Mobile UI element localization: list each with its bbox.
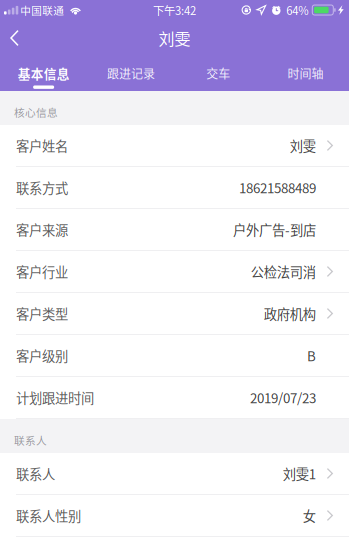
staticText: 时间轴 xyxy=(287,65,323,82)
staticText: 政府机构 xyxy=(264,304,316,323)
staticText: 户外广告-到店 xyxy=(233,220,316,239)
staticText: 中国联通 xyxy=(20,2,64,18)
staticText: 客户级别 xyxy=(16,346,68,365)
button[interactable]: 客户来源 xyxy=(0,209,349,251)
staticText: 客户来源 xyxy=(16,220,68,239)
staticText: B xyxy=(307,346,316,365)
staticText: 64% xyxy=(286,2,308,18)
staticText: 2019/07/23 xyxy=(250,388,316,407)
button[interactable]: 基本信息 xyxy=(0,56,87,91)
staticText: 联系人 xyxy=(14,432,47,448)
staticText: 交车 xyxy=(206,65,230,82)
staticText: 基本信息 xyxy=(18,64,70,82)
staticText: 公检法司消 xyxy=(251,262,316,281)
staticText: 联系人性别 xyxy=(16,506,81,525)
button[interactable]: 联系方式 xyxy=(0,167,349,209)
button[interactable]: 联系人性别 xyxy=(0,495,349,537)
button[interactable]: 客户类型 xyxy=(0,293,349,335)
staticText: 18621588489 xyxy=(239,178,316,197)
staticText: 核心信息 xyxy=(14,104,58,120)
staticText: 客户类型 xyxy=(16,304,68,323)
staticText: 女 xyxy=(303,506,316,525)
staticText: 联系人 xyxy=(16,464,55,483)
button[interactable]: Back xyxy=(0,20,44,56)
button[interactable]: 客户行业 xyxy=(0,251,349,293)
staticText: 刘雯1 xyxy=(283,464,316,483)
button[interactable]: 客户姓名 xyxy=(0,125,349,167)
staticText: 客户行业 xyxy=(16,262,68,281)
staticText: 跟进记录 xyxy=(107,65,155,82)
button[interactable]: 计划跟进时间 xyxy=(0,377,349,419)
button[interactable]: 跟进记录 xyxy=(87,56,174,91)
staticText: 客户姓名 xyxy=(16,136,68,155)
staticText: 联系方式 xyxy=(16,178,68,197)
button[interactable]: 时间轴 xyxy=(262,56,349,91)
button[interactable]: 交车 xyxy=(174,56,262,91)
button[interactable]: 联系人 xyxy=(0,453,349,495)
staticText: 刘雯 xyxy=(158,26,190,50)
staticText: 刘雯 xyxy=(290,136,316,155)
staticText: 下午3:42 xyxy=(153,2,196,18)
staticText: 计划跟进时间 xyxy=(16,388,94,407)
button[interactable]: 客户级别 xyxy=(0,335,349,377)
